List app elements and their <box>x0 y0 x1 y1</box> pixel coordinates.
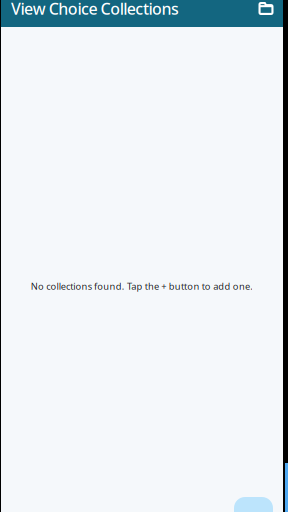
staticText: No collections found. Tap the + button t… <box>31 280 253 292</box>
staticText: View Choice Collections <box>11 0 179 19</box>
button[interactable]: Add collection <box>234 497 273 512</box>
button[interactable]: Collections <box>254 0 278 17</box>
